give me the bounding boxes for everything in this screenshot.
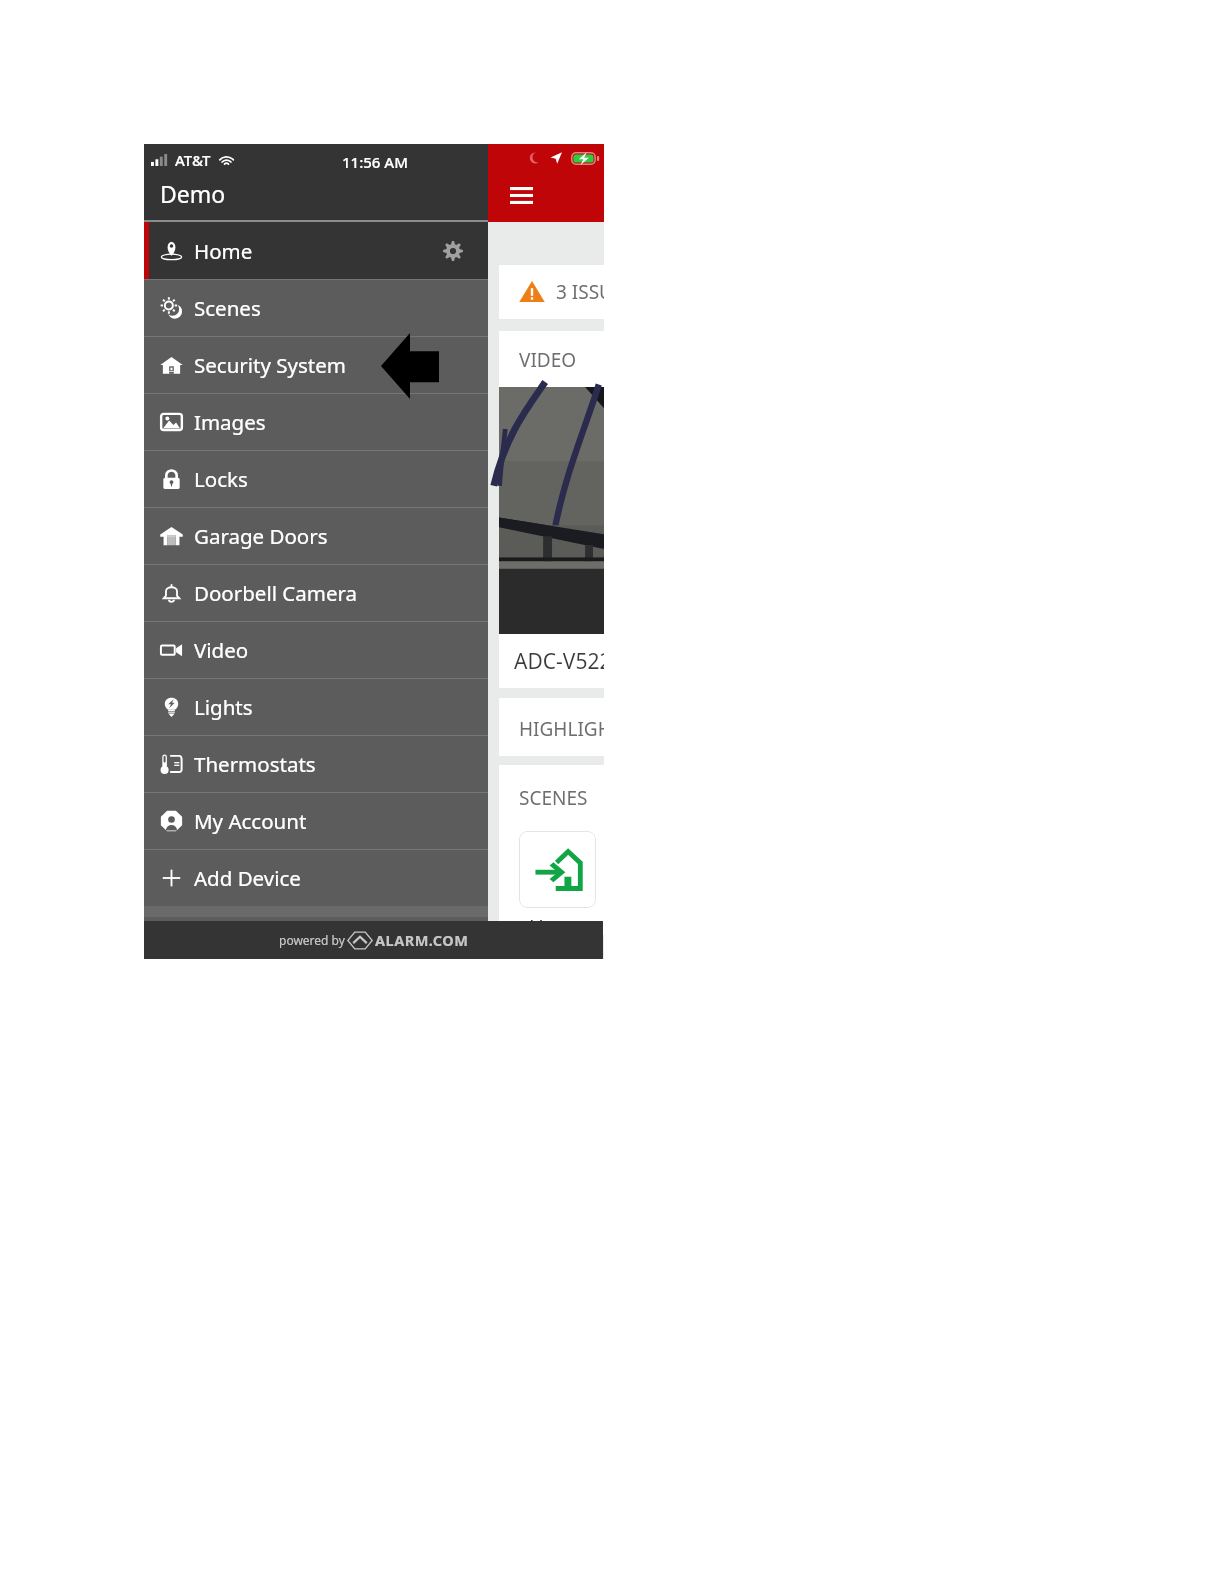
button[interactable]: Add Device: [144, 849, 488, 906]
staticText: Scenes: [194, 294, 261, 322]
button[interactable]: Security System: [144, 336, 488, 393]
staticText: Lights: [194, 693, 253, 721]
button[interactable]: Home scene: [519, 831, 596, 908]
button[interactable]: Lights: [144, 678, 488, 735]
button[interactable]: Thermostats: [144, 735, 488, 792]
staticText: Security System: [194, 351, 346, 379]
staticText: Thermostats: [194, 750, 316, 778]
staticText: Home: [529, 913, 586, 940]
staticText: Add Device: [194, 864, 301, 892]
button[interactable]: VIDEO: [499, 331, 604, 688]
staticText: HIGHLIGHTS: [519, 716, 604, 742]
staticText: Demo: [160, 178, 226, 209]
button[interactable]: Garage Doors: [144, 507, 488, 564]
staticText: Images: [194, 408, 266, 436]
staticText: powered by: [279, 932, 345, 948]
staticText: 11:56 AM: [342, 152, 408, 172]
staticText: Video: [194, 636, 249, 664]
button[interactable]: HIGHLIGHTS: [499, 698, 604, 756]
button[interactable]: Settings: [443, 241, 463, 261]
button[interactable]: My Account: [144, 792, 488, 849]
staticText: SCENES: [519, 785, 588, 811]
staticText: AT&T: [175, 150, 211, 170]
staticText: Locks: [194, 465, 248, 493]
button[interactable]: Video: [144, 621, 488, 678]
staticText: ALARM.COM: [375, 930, 469, 950]
staticText: VIDEO: [519, 347, 577, 373]
button[interactable]: Doorbell Camera: [144, 564, 488, 621]
staticText: Home: [194, 237, 253, 265]
staticText: ADC-V522IR: [514, 647, 604, 676]
button[interactable]: Locks: [144, 450, 488, 507]
button[interactable]: Images: [144, 393, 488, 450]
button[interactable]: Home: [144, 222, 488, 279]
staticText: 3 ISSUES: [556, 279, 604, 305]
staticText: Garage Doors: [194, 522, 328, 550]
button[interactable]: Menu: [497, 173, 545, 217]
staticText: My Account: [194, 807, 307, 835]
staticText: Doorbell Camera: [194, 579, 358, 607]
button[interactable]: 3 ISSUES: [499, 265, 604, 319]
button[interactable]: Scenes: [144, 279, 488, 336]
button[interactable]: SCENES: [499, 765, 604, 935]
